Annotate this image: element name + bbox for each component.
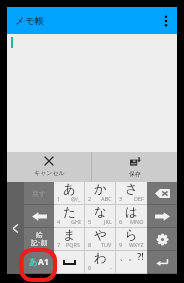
button[interactable]: さ	[116, 182, 147, 204]
button[interactable]: な	[85, 205, 115, 227]
button[interactable]: わ	[85, 251, 115, 273]
button[interactable]	[54, 251, 84, 273]
staticText: 保存	[129, 170, 141, 178]
button[interactable]: た	[54, 205, 84, 227]
staticText: さ	[125, 181, 138, 197]
staticText: 絵	[36, 231, 43, 239]
staticText: な	[94, 204, 107, 220]
button[interactable]: 保存	[92, 152, 177, 182]
staticText: WXYZ	[129, 241, 144, 248]
staticText: 0	[88, 264, 92, 271]
staticText: キャンセル	[34, 169, 65, 177]
staticText: ABC	[101, 195, 112, 202]
staticText: 9	[119, 241, 123, 248]
staticText: ま	[63, 227, 76, 243]
button[interactable]: キャンセル	[7, 152, 91, 182]
button[interactable]: ら	[116, 228, 147, 250]
staticText: 戻す	[32, 189, 47, 198]
staticText: 7	[57, 241, 61, 248]
button[interactable]: Emoji, symbols and emoticons	[24, 228, 54, 250]
staticText: PQRS	[66, 241, 81, 248]
button[interactable]: Move cursor right	[147, 205, 177, 227]
staticText: あ	[63, 181, 76, 197]
staticText: GHI	[71, 218, 81, 225]
button[interactable]: Undo	[24, 182, 54, 204]
staticText: あ	[29, 257, 38, 268]
staticText: や	[94, 227, 107, 243]
button[interactable]: Backspace	[147, 182, 177, 204]
staticText: JKL	[104, 218, 112, 225]
staticText: MNO	[130, 218, 144, 225]
button[interactable]: Hide keyboard	[7, 182, 24, 274]
button[interactable]: Move cursor left	[24, 205, 54, 227]
staticText: 1	[57, 195, 61, 202]
staticText: 2	[88, 195, 92, 202]
staticText: A1	[38, 256, 49, 268]
staticText: DEF	[134, 195, 144, 202]
staticText: @/_	[71, 195, 81, 202]
staticText: 5	[88, 218, 92, 225]
button[interactable]: あ	[54, 182, 84, 204]
staticText: 、。?!	[119, 250, 144, 262]
staticText: -	[110, 264, 112, 271]
staticText: 4	[57, 218, 61, 225]
button[interactable]: ま	[54, 228, 84, 250]
button[interactable]: Enter	[147, 251, 177, 273]
staticText: 8	[88, 241, 92, 248]
button[interactable]: More options	[155, 7, 177, 34]
button[interactable]: Switch input mode	[24, 251, 54, 273]
staticText: 6	[119, 218, 123, 225]
staticText: た	[63, 204, 76, 220]
staticText: 記･顔	[31, 239, 48, 247]
staticText: か	[94, 181, 107, 197]
staticText: メモ帳	[15, 15, 44, 27]
button[interactable]: は	[116, 205, 147, 227]
button[interactable]: Keyboard settings	[147, 228, 177, 250]
button[interactable]: か	[85, 182, 115, 204]
staticText: TUV	[101, 241, 112, 248]
staticText: 3	[119, 195, 123, 202]
button[interactable]: や	[85, 228, 115, 250]
staticText: わ	[94, 250, 107, 266]
button[interactable]: 、。?!	[116, 251, 147, 273]
staticText: ら	[125, 227, 138, 243]
staticText: は	[125, 204, 138, 220]
